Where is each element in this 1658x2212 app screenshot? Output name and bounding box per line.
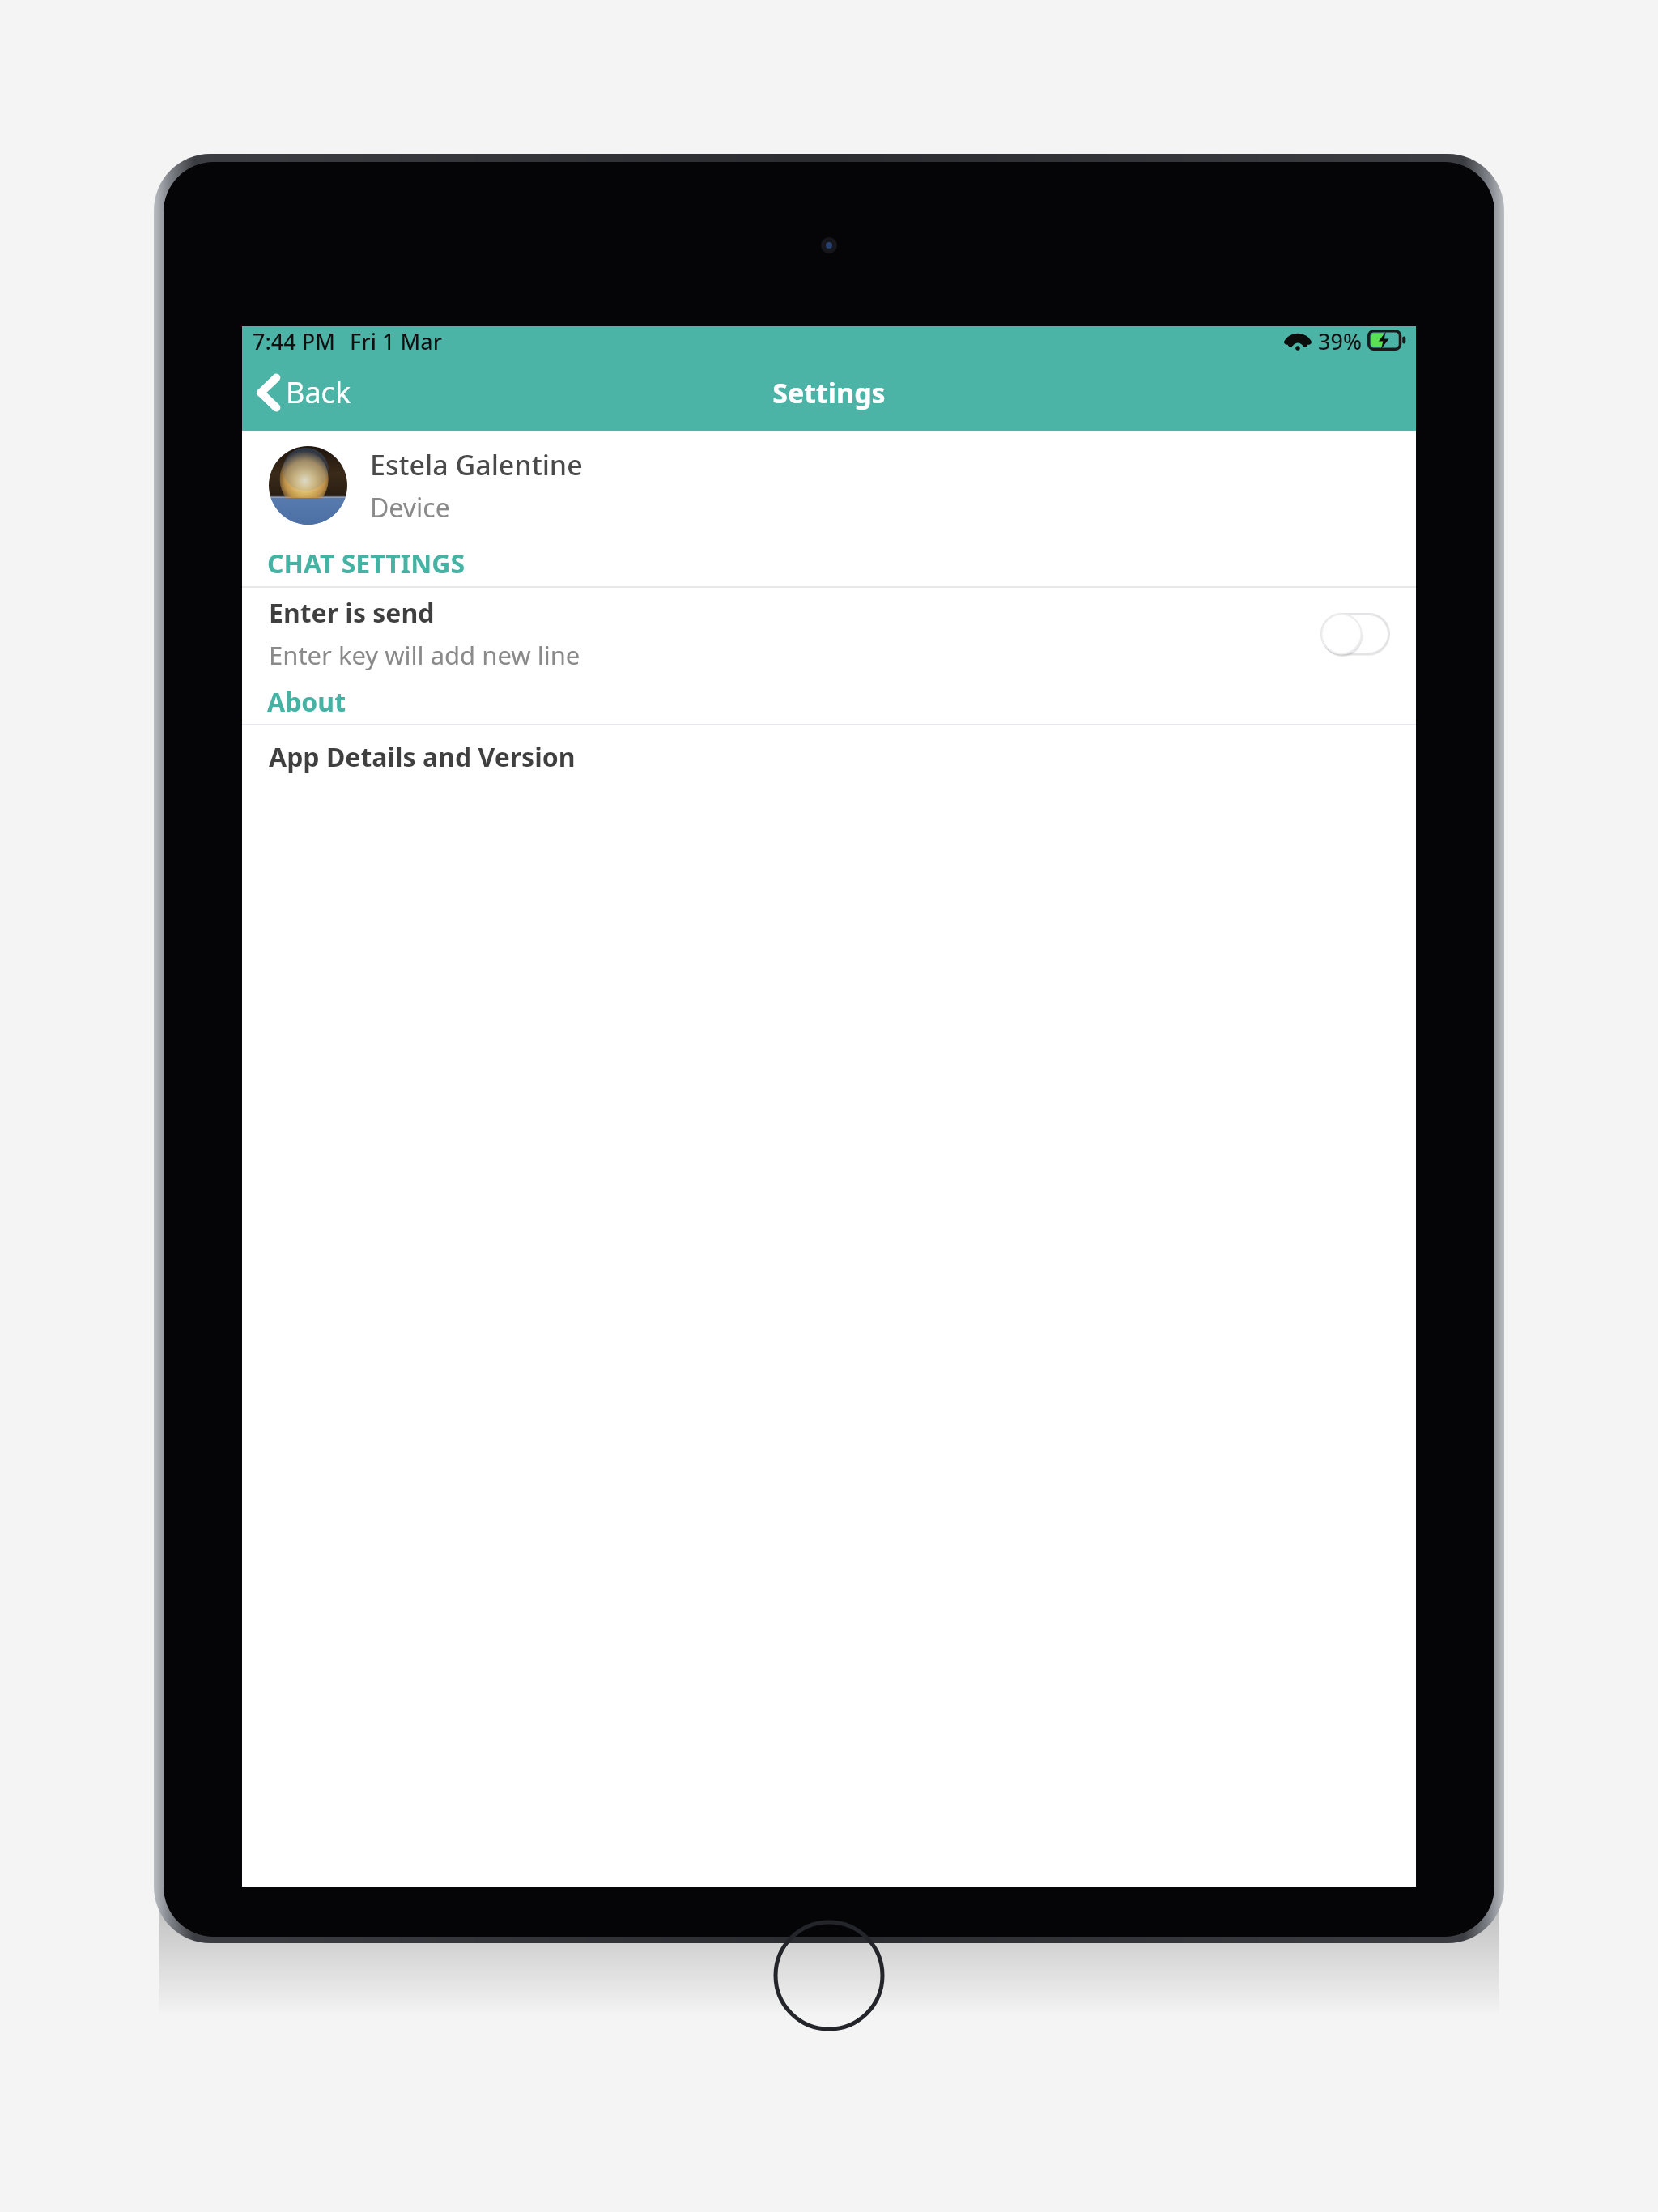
staticText: Device xyxy=(370,490,450,525)
other: Battery charging xyxy=(1367,330,1406,351)
other: Wi-Fi xyxy=(1285,330,1311,351)
button[interactable]: Estela Galentine xyxy=(242,431,1416,540)
staticText: 39% xyxy=(1318,326,1362,354)
button[interactable]: App Details and Version xyxy=(242,725,1416,789)
staticText: Settings xyxy=(772,374,886,411)
staticText: CHAT SETTINGS xyxy=(267,546,466,581)
button[interactable]: Enter is send toggle xyxy=(1320,613,1390,655)
staticText: Estela Galentine xyxy=(370,446,583,483)
staticText: App Details and Version xyxy=(269,739,576,775)
button[interactable]: Enter is send xyxy=(242,588,1416,679)
staticText: 7:44 PM xyxy=(253,326,335,354)
staticText: Enter is send xyxy=(269,595,435,631)
button[interactable]: Back xyxy=(242,364,368,420)
staticText: About xyxy=(267,684,346,720)
staticText: Enter key will add new line xyxy=(269,638,580,672)
staticText: Fri 1 Mar xyxy=(350,326,443,354)
staticText: Back xyxy=(286,372,351,412)
